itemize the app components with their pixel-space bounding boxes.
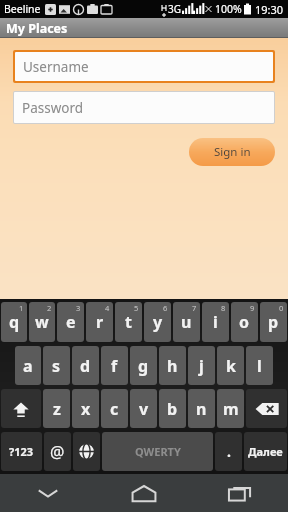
button[interactable]: c [101, 389, 128, 428]
button[interactable]: h [159, 346, 186, 385]
staticText: d [80, 355, 91, 377]
button[interactable]: g [130, 346, 157, 385]
button[interactable]: f [101, 346, 128, 385]
staticText: 8 [221, 303, 226, 313]
button[interactable]: l [246, 346, 273, 385]
staticText: l [257, 355, 262, 377]
button[interactable]: d [72, 346, 99, 385]
staticText: w [35, 311, 49, 333]
button[interactable]: i [202, 302, 229, 342]
staticText: 3 [76, 303, 81, 313]
button[interactable]: a [15, 346, 41, 385]
staticText: c [110, 398, 119, 420]
staticText: 3G [168, 2, 181, 16]
button[interactable]: @ [44, 432, 71, 471]
staticText: x [81, 398, 91, 420]
button[interactable]: o [231, 302, 258, 342]
button[interactable]: ?123 [1, 432, 42, 471]
staticText: r [96, 311, 104, 333]
button[interactable]: s [43, 346, 70, 385]
staticText: u [181, 311, 192, 333]
button[interactable]: e [57, 302, 84, 342]
button[interactable]: Sign in [189, 138, 275, 166]
button[interactable]: m [217, 389, 244, 428]
button[interactable]: p [260, 302, 287, 342]
staticText: 5 [134, 303, 139, 313]
staticText: p [268, 311, 279, 333]
staticText: o [239, 311, 250, 333]
staticText: 9 [250, 303, 255, 313]
staticText: e [66, 311, 76, 333]
staticText: h [167, 355, 178, 377]
staticText: @ [50, 441, 65, 463]
staticText: f [111, 355, 118, 377]
button[interactable]: Далее [244, 432, 287, 471]
staticText: 7 [192, 303, 197, 313]
button[interactable]: Password [14, 92, 274, 123]
button[interactable]: w [29, 302, 55, 342]
staticText: Далее [248, 444, 283, 459]
staticText: m [223, 398, 239, 420]
button[interactable]: Back [26, 474, 70, 512]
button[interactable]: Change language [73, 432, 100, 471]
button[interactable]: Recent apps [218, 474, 262, 512]
staticText: t [125, 311, 132, 333]
button[interactable]: v [130, 389, 157, 428]
button[interactable]: t [115, 302, 142, 342]
staticText: 0 [279, 303, 284, 313]
staticText: ?123 [9, 444, 34, 459]
button[interactable]: . [215, 432, 242, 471]
staticText: j [199, 355, 204, 377]
staticText: y [153, 311, 163, 333]
staticText: z [53, 398, 61, 420]
staticText: g [138, 355, 149, 377]
button[interactable]: y [144, 302, 171, 342]
staticText: Beeline [4, 2, 41, 16]
button[interactable]: x [72, 389, 99, 428]
staticText: 4 [105, 303, 110, 313]
staticText: b [167, 398, 178, 420]
staticText: 1 [19, 303, 24, 313]
staticText: n [196, 398, 207, 420]
staticText: v [139, 398, 149, 420]
staticText: k [226, 355, 236, 377]
staticText: Username [23, 58, 89, 76]
button[interactable]: j [188, 346, 215, 385]
staticText: s [52, 355, 61, 377]
button[interactable]: Username [15, 52, 273, 81]
staticText: QWERTY [135, 444, 181, 459]
staticText: Password [22, 99, 84, 117]
staticText: 2 [47, 303, 52, 313]
button[interactable]: Shift [1, 389, 41, 428]
button[interactable]: Home [122, 474, 166, 512]
button[interactable]: q [1, 302, 27, 342]
button[interactable]: n [188, 389, 215, 428]
button[interactable]: r [86, 302, 113, 342]
staticText: i [213, 311, 218, 333]
staticText: . [227, 442, 231, 461]
staticText: My Places [6, 20, 68, 37]
button[interactable]: k [217, 346, 244, 385]
staticText: a [23, 355, 33, 377]
staticText: q [9, 311, 20, 333]
button[interactable]: z [43, 389, 70, 428]
button[interactable]: b [159, 389, 186, 428]
staticText: 19:30 [255, 2, 284, 17]
button[interactable]: Backspace [246, 389, 287, 428]
staticText: Sign in [214, 144, 251, 160]
button[interactable]: QWERTY [102, 432, 213, 471]
staticText: 100% [215, 2, 242, 16]
staticText: 6 [163, 303, 168, 313]
button[interactable]: u [173, 302, 200, 342]
